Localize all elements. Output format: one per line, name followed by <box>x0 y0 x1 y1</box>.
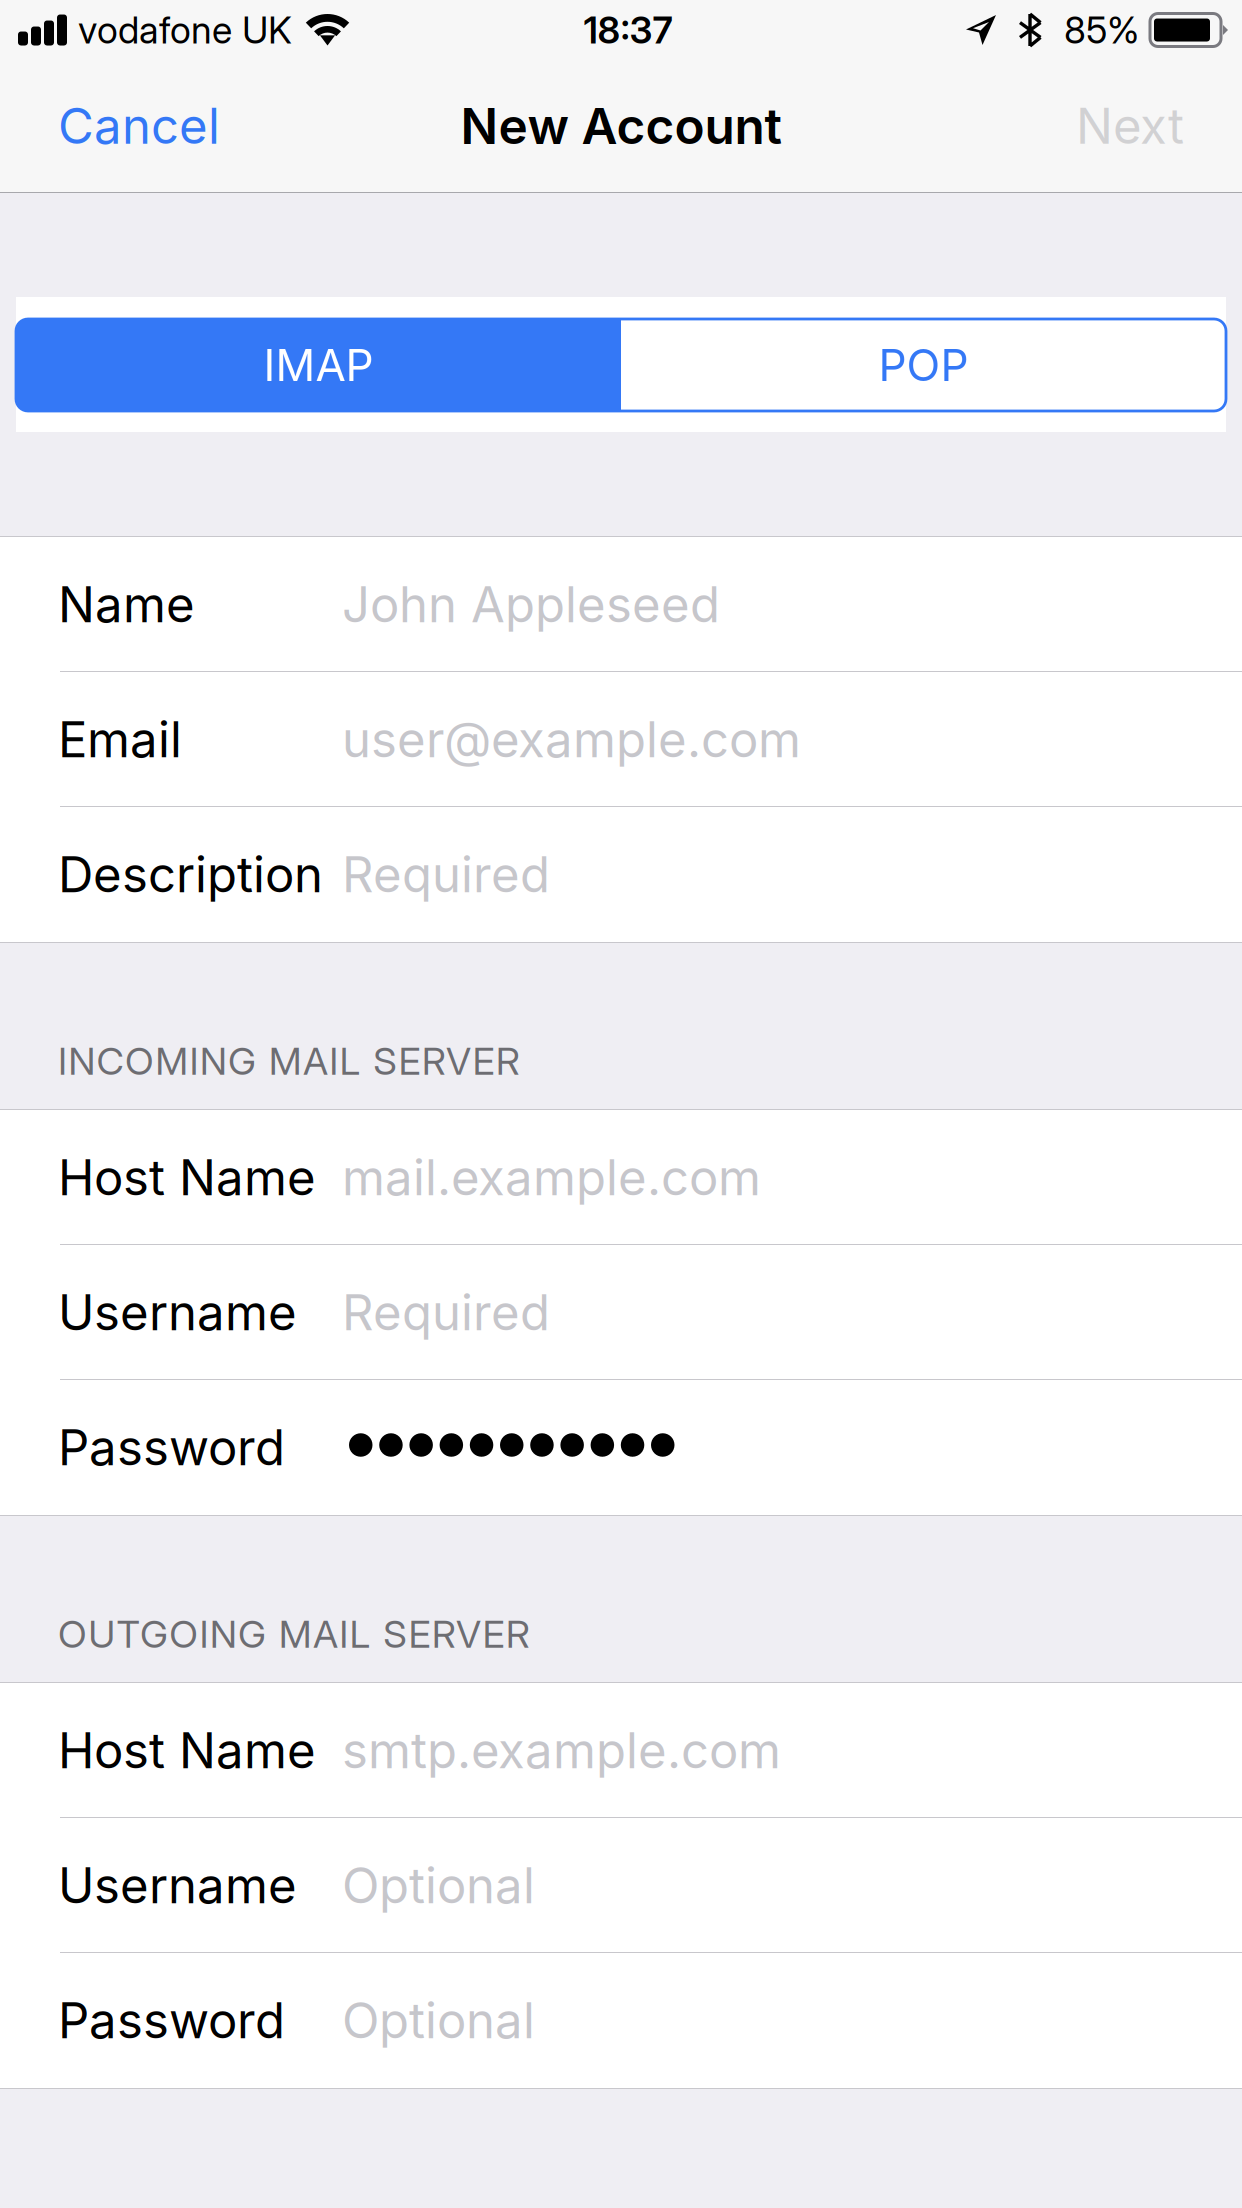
staticText: New Account <box>460 96 781 156</box>
button[interactable]: Cancel <box>0 60 250 192</box>
staticText: smtp.example.com <box>342 1721 781 1780</box>
staticText: Cancel <box>58 96 220 156</box>
button[interactable]: POP <box>621 319 1226 411</box>
button[interactable]: Email <box>0 672 1242 807</box>
staticText: OUTGOING MAIL SERVER <box>58 1611 530 1657</box>
staticText: INCOMING MAIL SERVER <box>58 1038 520 1084</box>
staticText: Username <box>58 1283 297 1342</box>
staticText: Name <box>58 575 195 634</box>
staticText: Host Name <box>58 1721 316 1780</box>
button[interactable]: IMAP <box>16 319 621 411</box>
button[interactable]: Description <box>0 807 1242 942</box>
staticText: Next <box>1076 96 1184 156</box>
button[interactable]: Username <box>0 1245 1242 1380</box>
staticText: Optional <box>342 1991 535 2050</box>
staticText: mail.example.com <box>342 1148 761 1207</box>
staticText: user@example.com <box>342 710 801 769</box>
staticText: 85% <box>1064 8 1139 52</box>
staticText: Description <box>58 845 323 904</box>
staticText: Username <box>58 1856 297 1915</box>
staticText: Password <box>58 1991 285 2050</box>
button[interactable]: Password <box>0 1380 1242 1515</box>
staticText: Email <box>58 710 182 769</box>
staticText: IMAP <box>263 338 373 392</box>
button[interactable]: Password <box>0 1953 1242 2088</box>
staticText: Host Name <box>58 1148 316 1207</box>
button[interactable]: Next <box>1046 60 1242 192</box>
staticText: 18:37 <box>583 8 672 52</box>
staticText: Optional <box>342 1856 535 1915</box>
staticText: Required <box>342 845 550 904</box>
button[interactable]: Host Name <box>0 1683 1242 1818</box>
staticText: Password <box>58 1418 285 1477</box>
staticText: John Appleseed <box>342 575 720 634</box>
button[interactable]: Name <box>0 537 1242 672</box>
staticText: POP <box>878 338 968 392</box>
staticText: Required <box>342 1283 550 1342</box>
staticText: vodafone UK <box>78 8 292 52</box>
button[interactable]: Host Name <box>0 1110 1242 1245</box>
button[interactable]: Username <box>0 1818 1242 1953</box>
